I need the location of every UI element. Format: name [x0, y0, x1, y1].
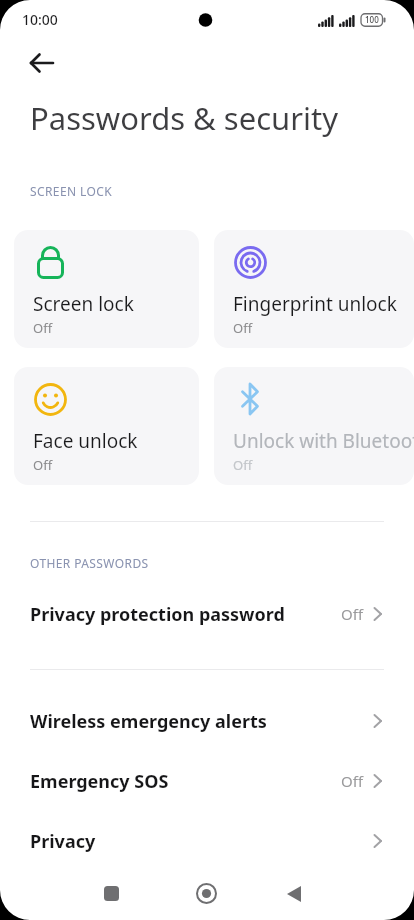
- button[interactable]: Emergency SOS: [0, 751, 414, 811]
- button[interactable]: Face unlock: [14, 367, 199, 485]
- staticText: Off: [341, 771, 364, 791]
- staticText: 100: [365, 14, 379, 25]
- staticText: Screen lock: [33, 291, 134, 317]
- button[interactable]: Privacy: [0, 811, 414, 871]
- staticText: Passwords & security: [30, 97, 339, 139]
- staticText: 10:00: [22, 10, 58, 29]
- staticText: Off: [33, 456, 53, 474]
- staticText: Privacy protection password: [30, 602, 285, 627]
- button[interactable]: Screen lock: [14, 230, 199, 348]
- staticText: Off: [33, 319, 53, 337]
- button[interactable]: [264, 871, 324, 917]
- staticText: Face unlock: [33, 428, 138, 454]
- staticText: Emergency SOS: [30, 769, 169, 794]
- button[interactable]: Wireless emergency alerts: [0, 691, 414, 751]
- button[interactable]: [22, 50, 62, 76]
- staticText: Off: [341, 604, 364, 624]
- staticText: Wireless emergency alerts: [30, 709, 267, 734]
- staticText: Unlock with Bluetooth: [233, 428, 414, 454]
- staticText: OTHER PASSWORDS: [30, 555, 149, 571]
- button[interactable]: Unlock with Bluetooth: [214, 367, 414, 485]
- button[interactable]: [81, 870, 141, 916]
- staticText: SCREEN LOCK: [30, 183, 113, 199]
- staticText: Off: [233, 319, 253, 337]
- staticText: Off: [233, 456, 253, 474]
- staticText: Fingerprint unlock: [233, 291, 397, 317]
- button[interactable]: Fingerprint unlock: [214, 230, 414, 348]
- staticText: Privacy: [30, 829, 96, 854]
- button[interactable]: Privacy protection password: [0, 590, 414, 638]
- button[interactable]: [176, 870, 236, 916]
